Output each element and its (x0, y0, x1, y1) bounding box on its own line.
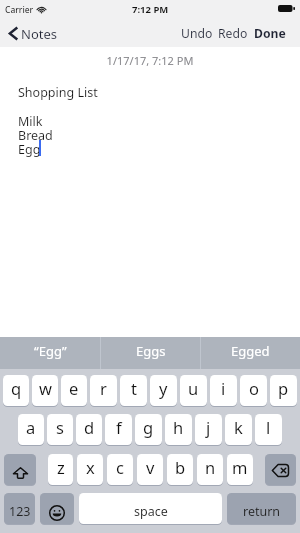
button[interactable]: k (225, 414, 252, 446)
staticText: t (131, 377, 137, 399)
button[interactable]: return (227, 493, 296, 525)
button[interactable]: c (107, 454, 133, 486)
staticText: Carrier (5, 4, 34, 16)
button[interactable]: e (61, 375, 87, 407)
button[interactable]: Undo (181, 25, 213, 42)
staticText: s (56, 416, 64, 438)
staticText: d (84, 416, 95, 438)
button[interactable]: z (48, 454, 73, 486)
staticText: 7:12 PM (132, 3, 169, 16)
button[interactable]: Eggs (101, 337, 200, 369)
button[interactable]: o (240, 375, 267, 407)
staticText: r (100, 377, 107, 399)
staticText: m (232, 456, 248, 478)
button[interactable]: Backspace (265, 454, 296, 486)
staticText: Egged (231, 342, 270, 360)
button[interactable]: Done (254, 25, 286, 42)
button[interactable]: j (195, 414, 222, 446)
button[interactable]: a (18, 414, 44, 446)
staticText: k (234, 416, 243, 438)
button[interactable]: s (47, 414, 73, 446)
staticText: x (86, 456, 95, 478)
staticText: a (26, 416, 36, 438)
staticText: Done (254, 25, 286, 42)
staticText: n (205, 456, 216, 478)
button[interactable]: n (197, 454, 223, 486)
staticText: q (11, 377, 22, 399)
button[interactable]: w (32, 375, 58, 407)
button[interactable]: y (150, 375, 177, 407)
staticText: Undo (181, 25, 213, 42)
button[interactable]: i (210, 375, 237, 407)
staticText: 123 (9, 503, 31, 520)
button[interactable]: m (227, 454, 253, 486)
staticText: return (243, 503, 281, 520)
button[interactable]: Redo (218, 25, 248, 42)
button[interactable]: “Egg” (0, 337, 100, 369)
staticText: b (175, 456, 186, 478)
button[interactable]: 123 (4, 493, 35, 525)
staticText: g (143, 416, 154, 438)
button[interactable]: t (120, 375, 147, 407)
button[interactable]: h (165, 414, 192, 446)
staticText: f (116, 416, 122, 438)
staticText: Eggs (136, 342, 166, 360)
button[interactable]: b (167, 454, 193, 486)
staticText: “Egg” (34, 342, 67, 360)
staticText: Notes (21, 25, 57, 43)
button[interactable]: v (137, 454, 163, 486)
button[interactable]: l (255, 414, 282, 446)
button[interactable]: x (77, 454, 103, 486)
button[interactable]: Egged (201, 337, 300, 369)
button[interactable]: space (79, 493, 222, 525)
staticText: w (39, 377, 52, 399)
button[interactable]: Notes (0, 20, 57, 47)
button[interactable]: g (135, 414, 162, 446)
button[interactable]: d (76, 414, 102, 446)
staticText: u (188, 377, 199, 399)
staticText: Shopping List (18, 84, 98, 101)
button[interactable]: f (105, 414, 132, 446)
staticText: Redo (218, 25, 248, 42)
button[interactable]: q (3, 375, 29, 407)
staticText: space (134, 503, 168, 520)
staticText: Milk Bread Egg (18, 113, 53, 158)
button[interactable]: p (270, 375, 297, 407)
staticText: j (206, 416, 211, 438)
staticText: e (69, 377, 79, 399)
staticText: o (249, 377, 259, 399)
staticText: 1/17/17, 7:12 PM (0, 53, 300, 68)
staticText: v (146, 456, 155, 478)
staticText: i (221, 377, 226, 399)
button[interactable]: Shift (4, 454, 36, 486)
staticText: h (173, 416, 184, 438)
staticText: p (278, 377, 289, 399)
button[interactable]: u (180, 375, 207, 407)
staticText: z (57, 456, 65, 478)
button[interactable]: r (90, 375, 117, 407)
button[interactable]: Emoji (40, 493, 74, 525)
staticText: l (266, 416, 271, 438)
staticText: c (116, 456, 124, 478)
staticText: y (159, 377, 168, 399)
